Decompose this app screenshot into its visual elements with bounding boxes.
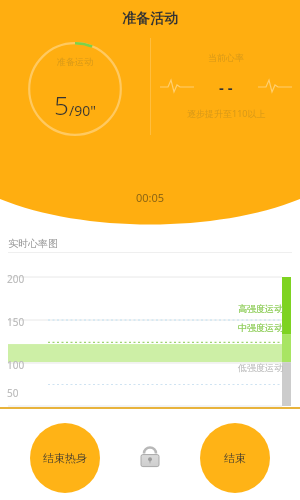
staticText: 实时心率图 (8, 237, 58, 250)
staticText: 150 (7, 315, 25, 329)
staticText: 逐步提升至110以上 (187, 107, 266, 119)
button[interactable]: Lock screen (133, 440, 167, 474)
staticText: 5 (54, 87, 69, 122)
staticText: 结束热身 (43, 451, 87, 465)
button[interactable]: 结束热身 (30, 423, 100, 493)
staticText: 准备活动 (122, 10, 178, 28)
staticText: 结束 (224, 451, 246, 465)
staticText: 准备运动 (57, 56, 93, 67)
staticText: 50 (7, 386, 19, 400)
staticText: 中强度运动 (238, 322, 283, 333)
staticText: - - (219, 77, 233, 97)
staticText: 当前心率 (208, 52, 244, 63)
staticText: /90" (69, 101, 96, 120)
staticText: 低强度运动 (238, 362, 283, 373)
staticText: 00:05 (136, 190, 165, 205)
staticText: 100 (7, 358, 25, 372)
staticText: 高强度运动 (238, 303, 283, 314)
button[interactable]: 结束 (200, 423, 270, 493)
staticText: 200 (7, 272, 25, 286)
